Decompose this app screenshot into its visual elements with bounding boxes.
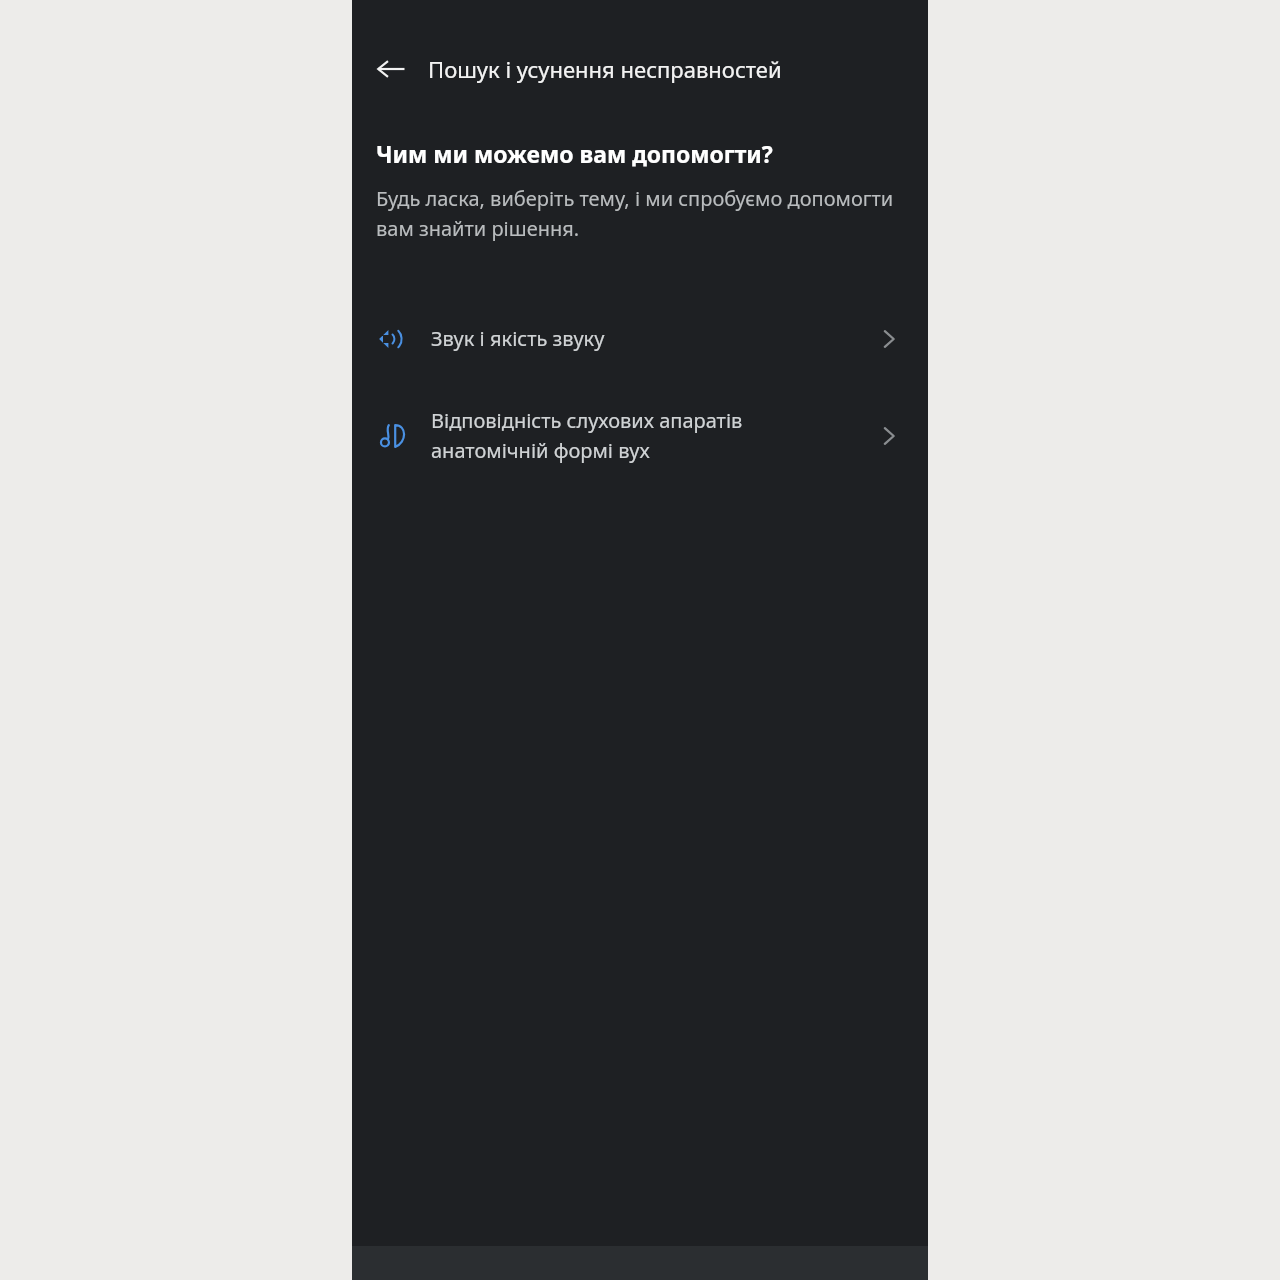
staticText: Звук і якість звуку	[431, 325, 850, 352]
staticText: Будь ласка, виберіть тему, і ми спробуєм…	[376, 185, 904, 242]
staticText: Відповідність слухових апаратів анатоміч…	[431, 407, 850, 464]
button[interactable]: Звук і якість звуку	[352, 290, 928, 387]
staticText: Чим ми можемо вам допомогти?	[376, 138, 773, 169]
button[interactable]: Відповідність слухових апаратів анатоміч…	[352, 387, 928, 484]
button[interactable]: Back	[367, 45, 415, 93]
staticText: Пошук і усунення несправностей	[428, 54, 782, 84]
